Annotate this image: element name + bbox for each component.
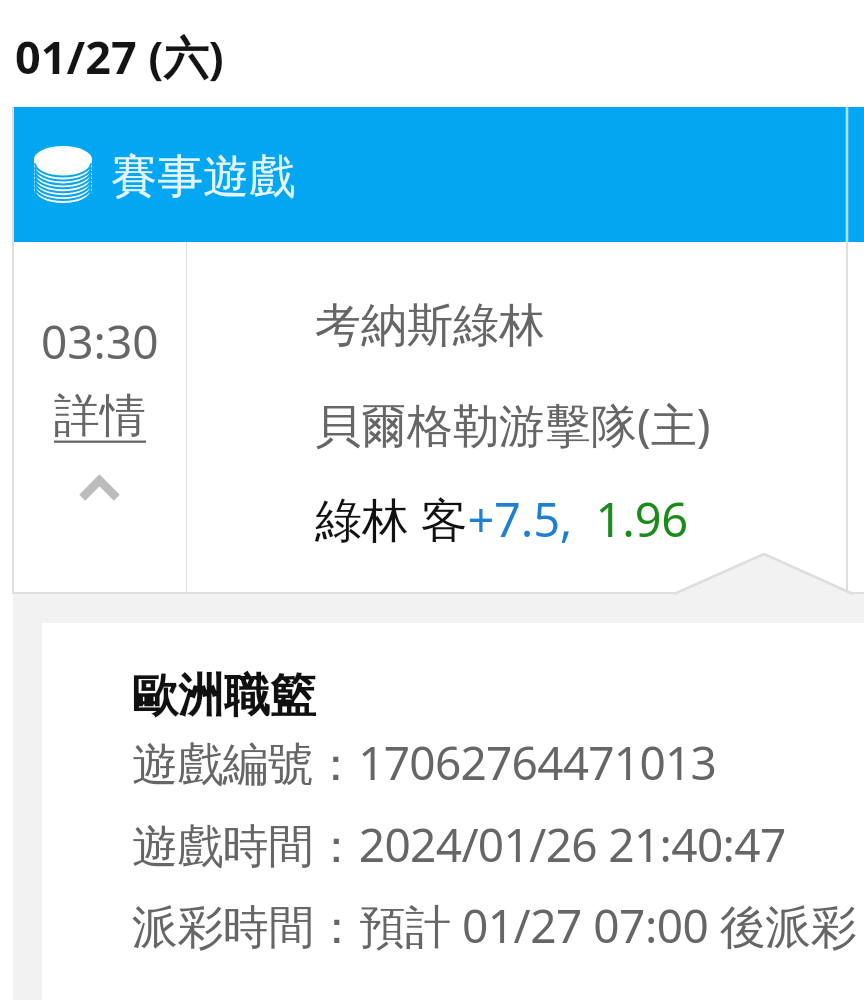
staticText: 01/27 (六)	[15, 26, 224, 87]
button[interactable]: 歐洲職籃	[42, 623, 864, 1000]
staticText: 派彩時間：預計 01/27 07:00 後派彩	[132, 894, 857, 957]
staticText: 賽事遊戲	[111, 148, 295, 206]
staticText: 貝爾格勒游擊隊(主)	[315, 393, 711, 456]
button[interactable]: 考納斯綠林	[187, 242, 864, 594]
button[interactable]: 賽事遊戲	[13, 107, 864, 242]
staticText: 詳情	[54, 387, 146, 445]
staticText: 遊戲編號：17062764471013	[132, 731, 717, 794]
other: 收合詳情	[81, 476, 118, 499]
staticText: 遊戲時間：2024/01/26 21:40:47	[132, 813, 786, 876]
staticText: 考納斯綠林	[315, 297, 545, 355]
other: 賽事遊戲	[34, 146, 92, 204]
staticText: 03:30	[41, 310, 159, 373]
button[interactable]: 03:30	[13, 242, 186, 594]
staticText: 歐洲職籃	[132, 667, 316, 725]
staticText: 綠林 客+7.5, 1.96	[315, 487, 689, 551]
